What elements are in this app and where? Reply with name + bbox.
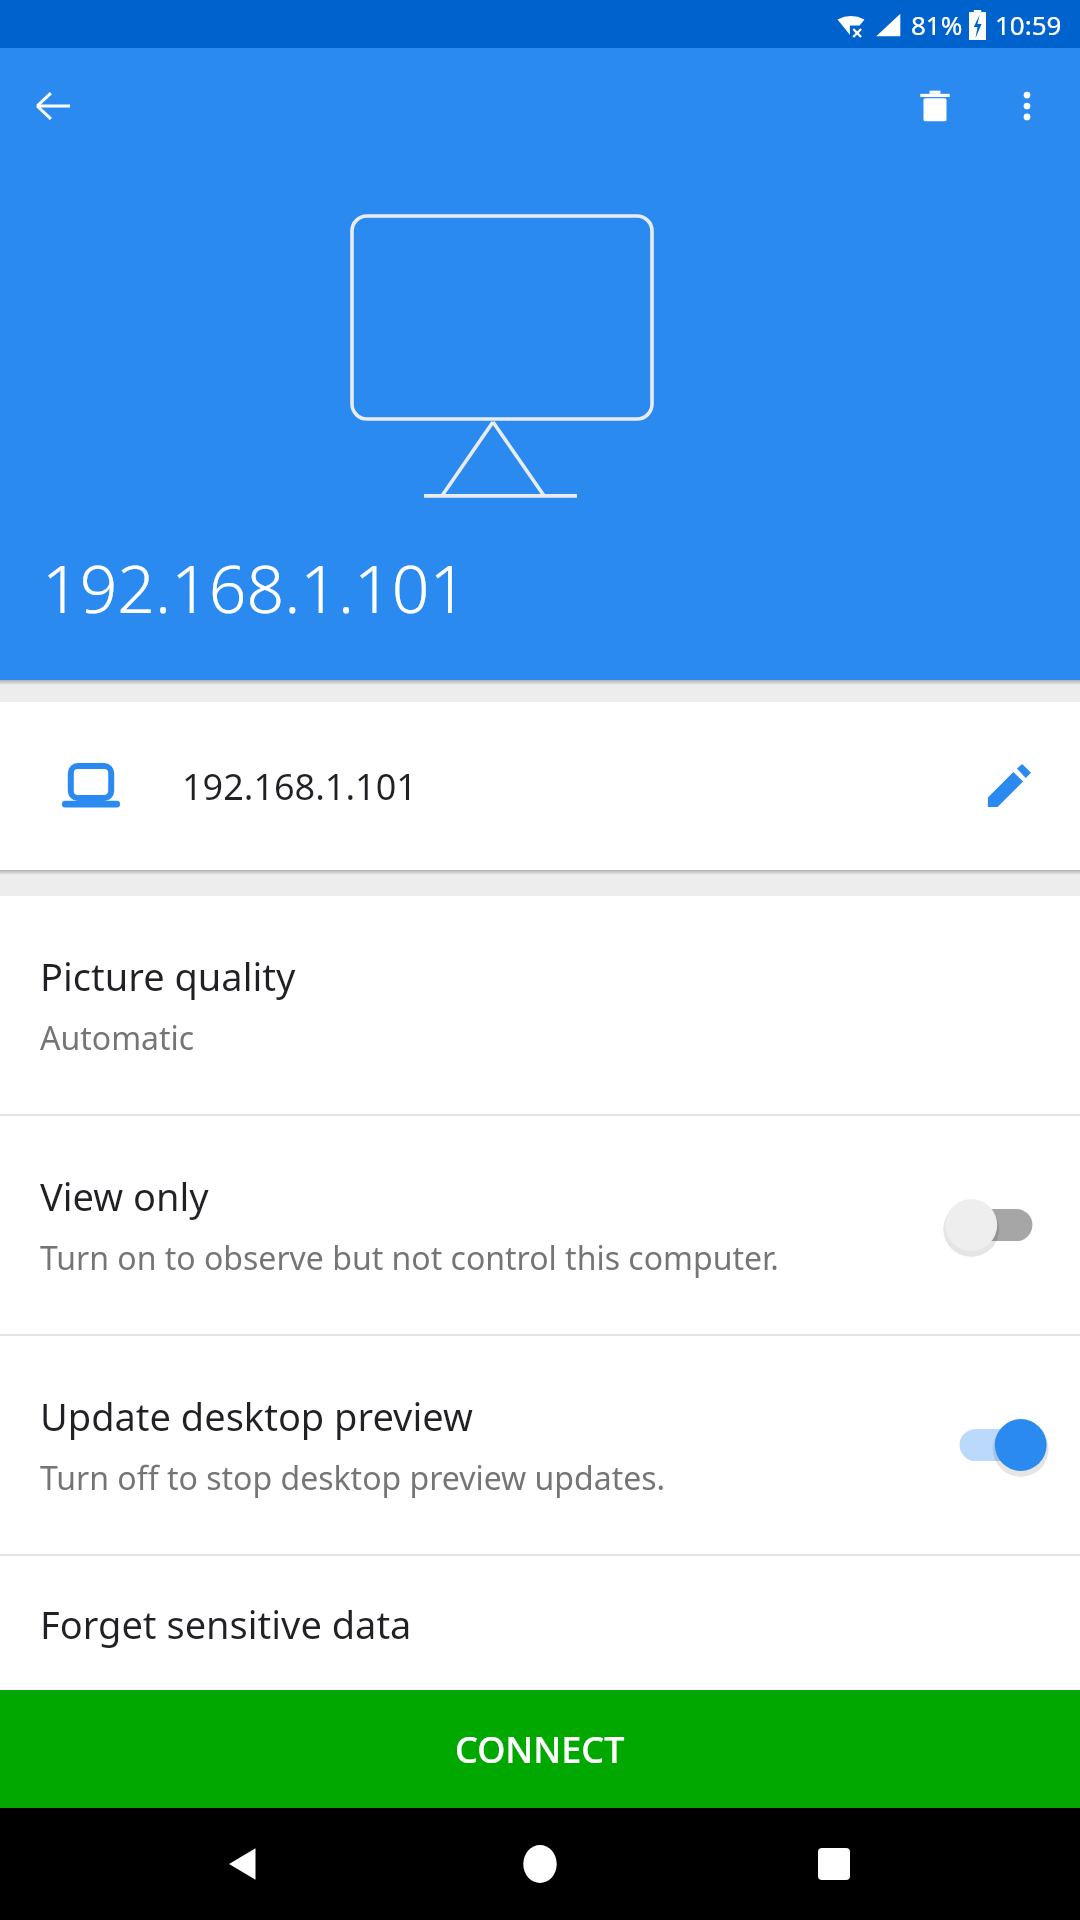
staticText: 81% <box>911 7 963 42</box>
staticText: 192.168.1.101 <box>182 762 417 811</box>
staticText: Update desktop preview <box>40 1390 473 1442</box>
button[interactable]: Update desktop preview <box>0 1336 1080 1554</box>
button[interactable]: Home <box>492 1816 588 1912</box>
button[interactable]: Forget sensitive data <box>0 1556 1080 1676</box>
button[interactable]: Delete <box>904 75 966 137</box>
button[interactable]: Back <box>22 75 84 137</box>
button[interactable]: Recent apps <box>786 1816 882 1912</box>
staticText: View only <box>40 1170 209 1222</box>
button[interactable]: Off <box>944 1190 1048 1260</box>
staticText: Picture quality <box>40 950 296 1002</box>
button[interactable]: On <box>944 1410 1048 1480</box>
button[interactable]: More options <box>996 75 1058 137</box>
staticText: CONNECT <box>455 1725 625 1774</box>
staticText: 192.168.1.101 <box>42 542 468 632</box>
staticText: Turn on to observe but not control this … <box>40 1236 779 1280</box>
staticText: 10:59 <box>995 7 1062 42</box>
button[interactable]: Picture quality <box>0 896 1080 1114</box>
button[interactable]: 192.168.1.101 <box>0 702 1080 870</box>
staticText: Forget sensitive data <box>40 1598 412 1650</box>
button[interactable]: CONNECT <box>0 1690 1080 1808</box>
button[interactable]: Edit <box>976 753 1042 819</box>
staticText: Automatic <box>40 1016 195 1060</box>
staticText: Turn off to stop desktop preview updates… <box>40 1456 666 1500</box>
button[interactable]: Back <box>198 1816 294 1912</box>
button[interactable]: View only <box>0 1116 1080 1334</box>
